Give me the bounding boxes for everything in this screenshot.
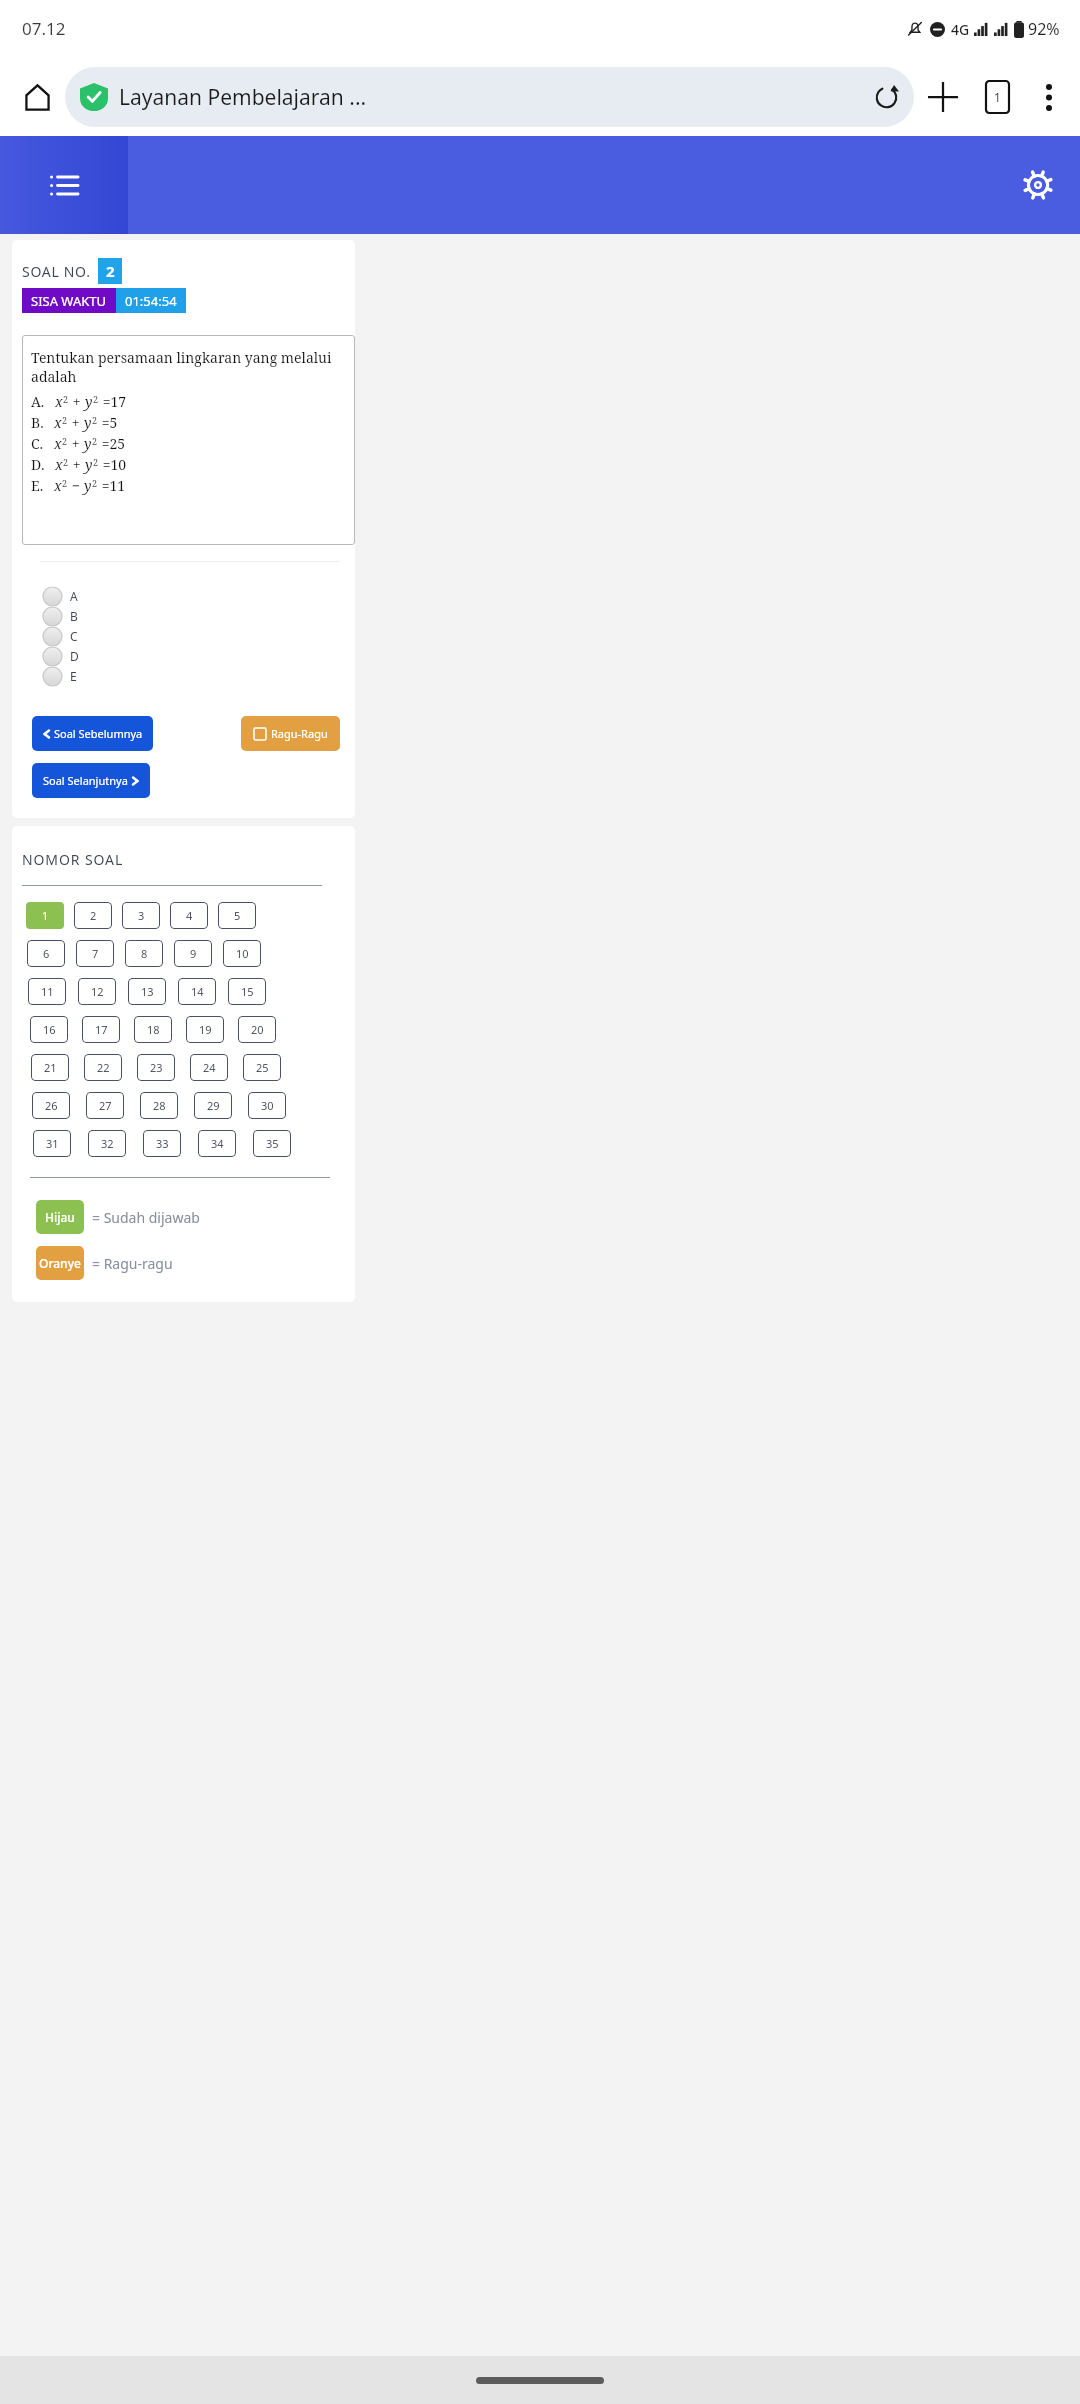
staticText: 10	[236, 946, 249, 961]
button[interactable]: 18	[134, 1016, 172, 1043]
button[interactable]: 4	[170, 902, 208, 929]
button[interactable]: 6	[27, 940, 65, 967]
button[interactable]: 28	[140, 1092, 178, 1119]
button[interactable]: 2	[74, 902, 112, 929]
staticText: Soal Selanjutnya	[43, 773, 128, 788]
button[interactable]: Oranye	[36, 1246, 173, 1280]
button[interactable]: 7	[76, 940, 114, 967]
button[interactable]: 14	[178, 978, 216, 1005]
button[interactable]: 21	[31, 1054, 69, 1081]
staticText: adalah	[31, 367, 77, 386]
staticText: 16	[43, 1022, 56, 1037]
staticText: 2	[90, 908, 97, 923]
button[interactable]: 8	[125, 940, 163, 967]
button[interactable]: 10	[223, 940, 261, 967]
staticText: = Ragu-ragu	[92, 1254, 173, 1273]
staticText: =10	[99, 455, 127, 474]
staticText: 20	[251, 1022, 264, 1037]
staticText: 18	[147, 1022, 160, 1037]
button[interactable]: Home	[12, 72, 62, 122]
staticText: 3	[138, 908, 145, 923]
staticText: 28	[153, 1098, 166, 1113]
staticText: x	[54, 434, 62, 453]
staticText: 31	[46, 1136, 59, 1151]
staticText: SISA WAKTU	[31, 292, 107, 310]
button[interactable]: Tabs	[970, 70, 1024, 124]
button[interactable]: 34	[198, 1130, 236, 1157]
button[interactable]: 5	[218, 902, 256, 929]
staticText: y	[84, 434, 92, 453]
staticText: Soal Sebelumnya	[54, 726, 143, 741]
button[interactable]: 17	[82, 1016, 120, 1043]
staticText: 15	[241, 984, 254, 999]
staticText: 2	[62, 435, 68, 447]
staticText: D	[70, 648, 79, 664]
staticText: x	[55, 455, 63, 474]
button[interactable]: 16	[30, 1016, 68, 1043]
staticText: 92%	[1028, 18, 1060, 40]
button[interactable]: Layanan Pembelajaran ...	[65, 67, 914, 127]
staticText: 4	[186, 908, 193, 923]
button[interactable]: Menu	[0, 136, 128, 234]
button[interactable]: A	[43, 586, 78, 606]
button[interactable]: Hijau	[36, 1200, 200, 1234]
staticText: 8	[141, 946, 148, 961]
button[interactable]: 25	[243, 1054, 281, 1081]
staticText: −	[68, 476, 84, 495]
staticText: 2	[62, 477, 68, 489]
staticText: 13	[141, 984, 154, 999]
button[interactable]: Soal Selanjutnya	[32, 763, 150, 798]
staticText: 14	[191, 984, 204, 999]
button[interactable]: 9	[174, 940, 212, 967]
button[interactable]: D	[43, 646, 79, 666]
button[interactable]: Ragu-Ragu	[241, 716, 340, 751]
staticText: 2	[92, 477, 98, 489]
staticText: 2	[63, 456, 69, 468]
staticText: +	[69, 392, 85, 411]
button[interactable]: More options	[1024, 72, 1074, 122]
button[interactable]: 1	[26, 902, 64, 929]
button[interactable]: E	[43, 666, 77, 686]
staticText: 4G	[951, 20, 970, 39]
button[interactable]: 32	[88, 1130, 126, 1157]
button[interactable]: New tab	[916, 70, 970, 124]
staticText: 1	[42, 908, 49, 923]
button[interactable]: 26	[32, 1092, 70, 1119]
staticText: 2	[106, 261, 115, 281]
button[interactable]: 11	[28, 978, 66, 1005]
staticText: 9	[190, 946, 197, 961]
staticText: y	[84, 413, 92, 432]
staticText: 2	[93, 393, 99, 405]
button[interactable]: Settings	[1008, 155, 1068, 215]
staticText: 29	[207, 1098, 220, 1113]
staticText: C.	[31, 434, 44, 453]
staticText: 23	[150, 1060, 163, 1075]
button[interactable]: 35	[253, 1130, 291, 1157]
staticText: Hijau	[45, 1209, 75, 1225]
button[interactable]: 12	[78, 978, 116, 1005]
button[interactable]: Soal Sebelumnya	[32, 716, 153, 751]
button[interactable]: 19	[186, 1016, 224, 1043]
button[interactable]: 33	[143, 1130, 181, 1157]
button[interactable]: 23	[137, 1054, 175, 1081]
button[interactable]: 30	[248, 1092, 286, 1119]
button[interactable]: 13	[128, 978, 166, 1005]
button[interactable]: 27	[86, 1092, 124, 1119]
staticText: 12	[91, 984, 104, 999]
button[interactable]: C	[43, 626, 78, 646]
button[interactable]: 29	[194, 1092, 232, 1119]
button[interactable]: B	[43, 606, 78, 626]
button[interactable]: 22	[84, 1054, 122, 1081]
staticText: 34	[211, 1136, 224, 1151]
staticText: +	[68, 413, 84, 432]
staticText: 7	[92, 946, 99, 961]
button[interactable]: Reload	[866, 77, 906, 117]
button[interactable]: 20	[238, 1016, 276, 1043]
button[interactable]: 31	[33, 1130, 71, 1157]
staticText: x	[54, 413, 62, 432]
button[interactable]: 24	[190, 1054, 228, 1081]
button[interactable]: 3	[122, 902, 160, 929]
staticText: 19	[199, 1022, 212, 1037]
staticText: 25	[256, 1060, 269, 1075]
button[interactable]: 15	[228, 978, 266, 1005]
